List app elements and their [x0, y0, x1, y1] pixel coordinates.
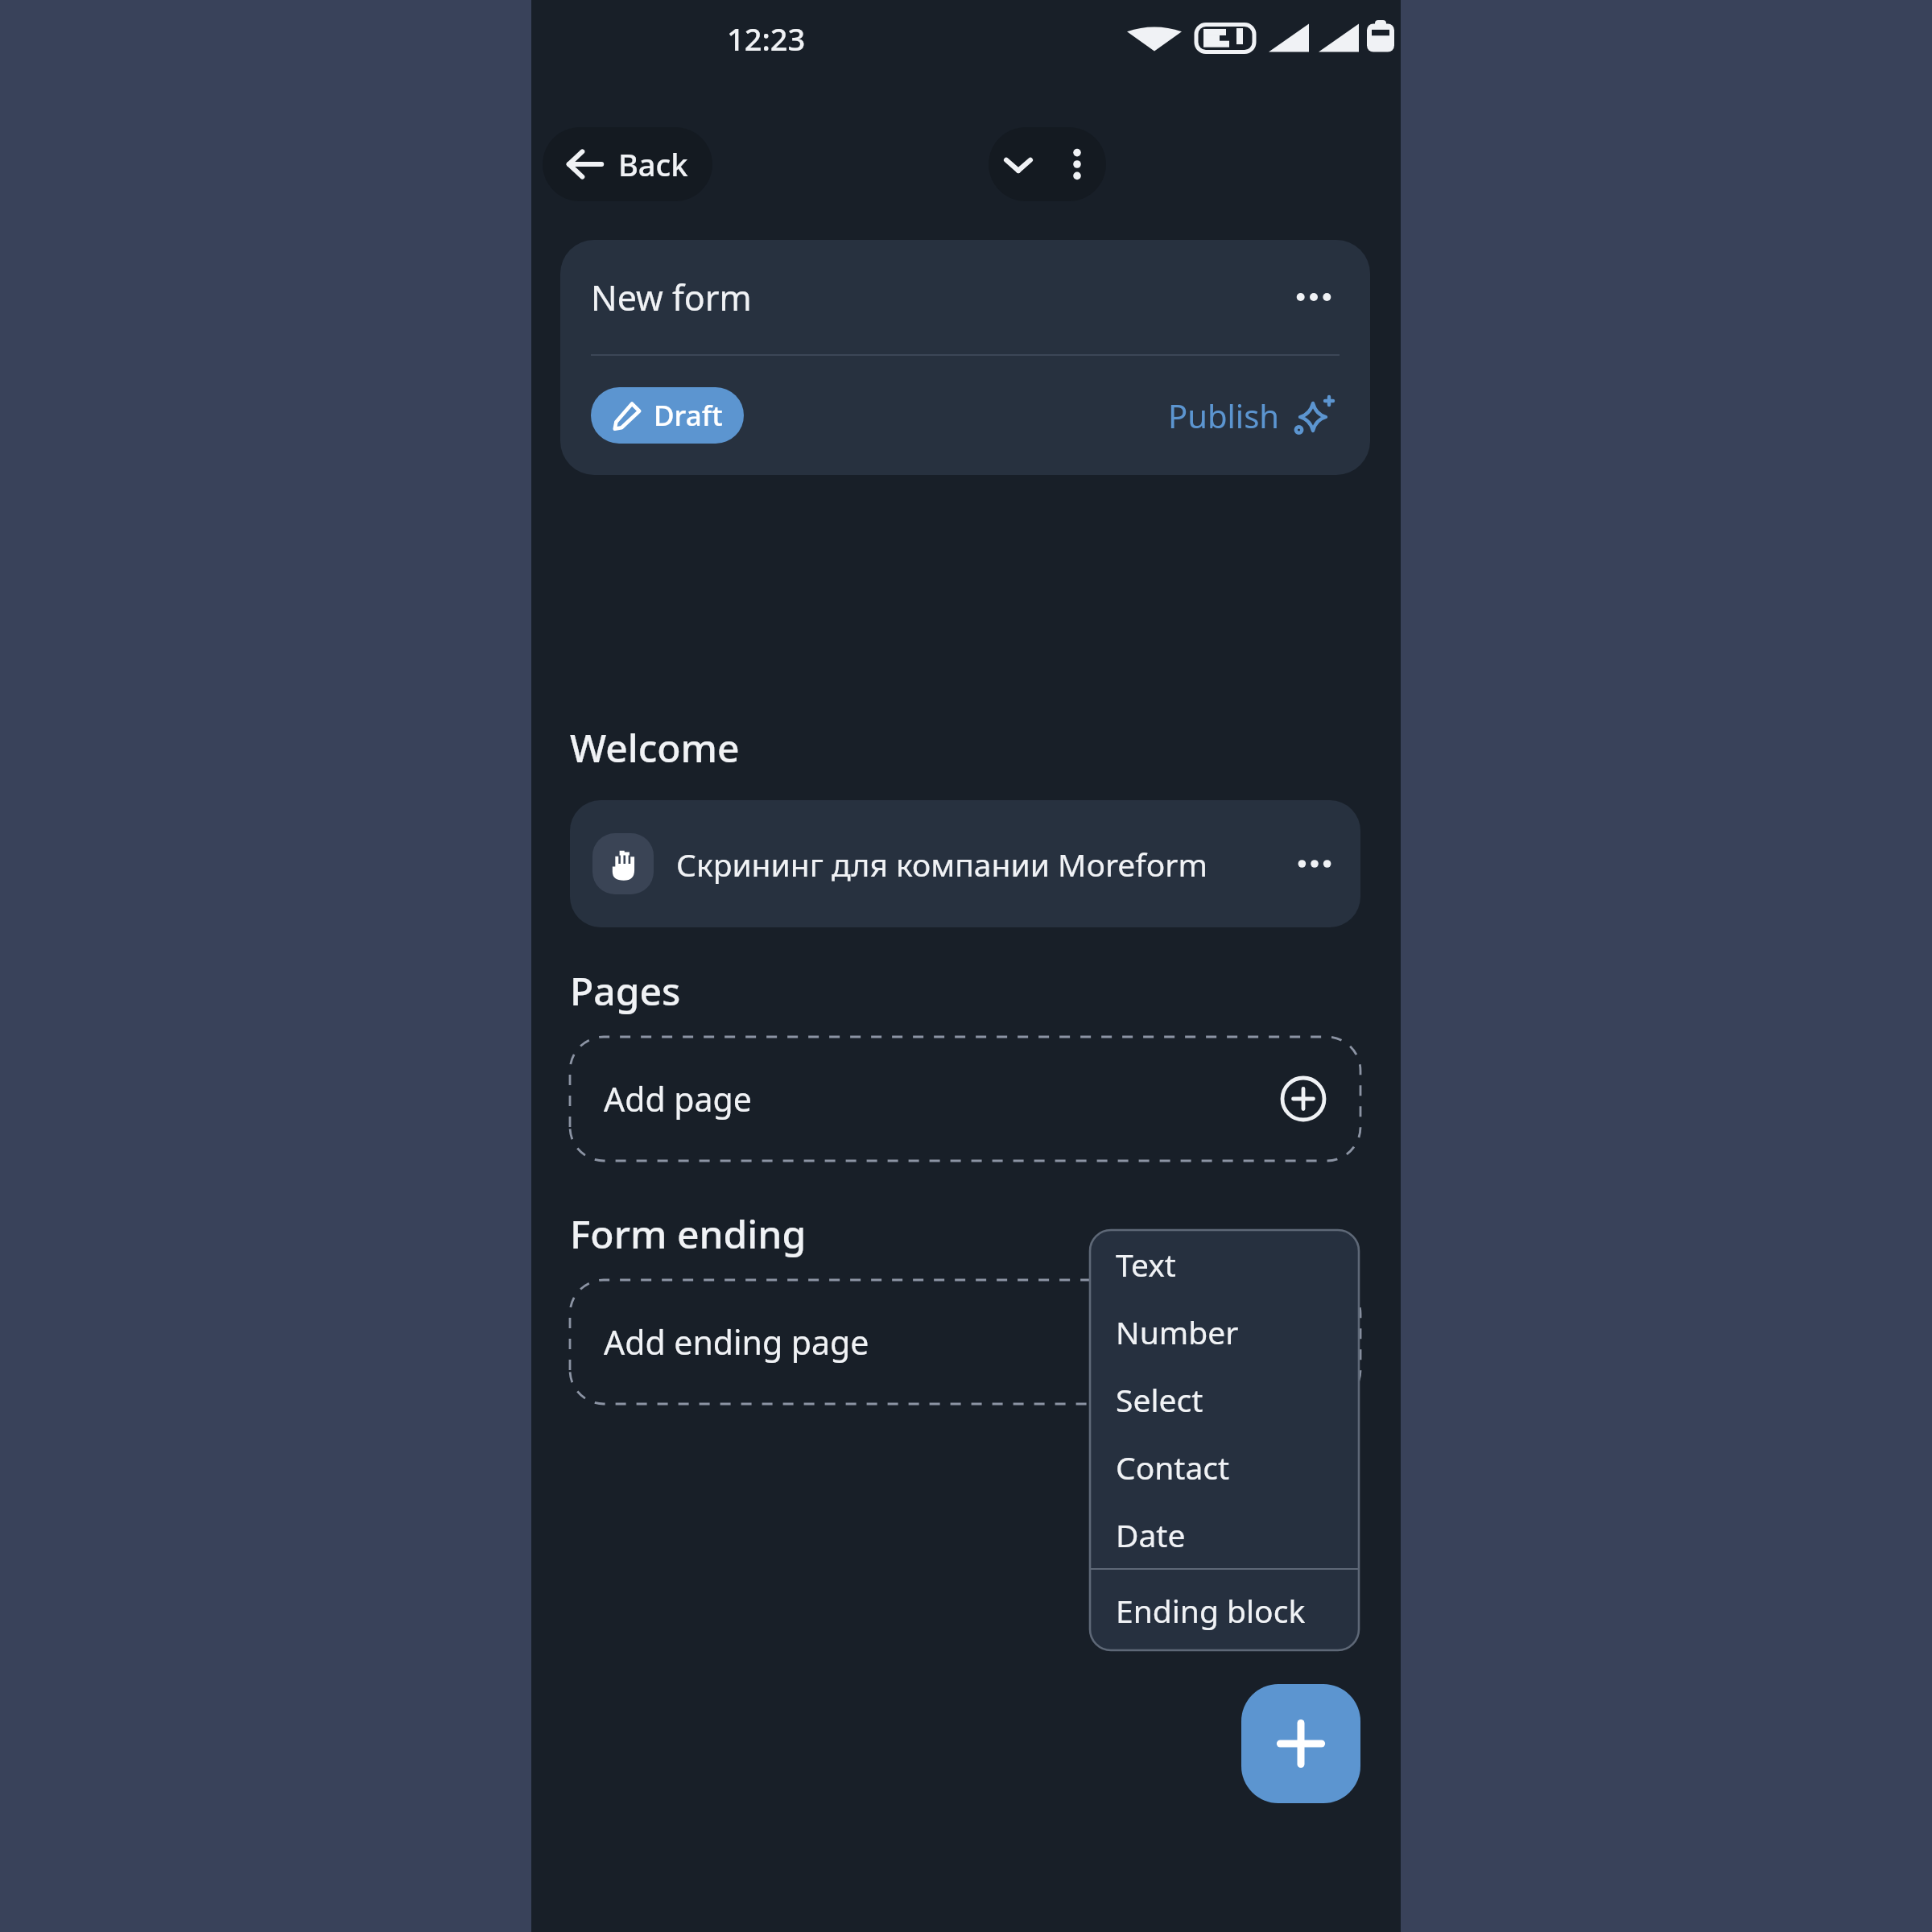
- staticText: Contact: [1116, 1446, 1230, 1488]
- staticText: Скрининг для компании Moreform: [676, 843, 1291, 885]
- button[interactable]: Form options: [1288, 271, 1340, 323]
- staticText: Ending block: [1116, 1589, 1306, 1632]
- button[interactable]: More options: [1047, 127, 1106, 201]
- staticText: Date: [1116, 1513, 1186, 1556]
- staticText: Welcome: [570, 721, 740, 774]
- button[interactable]: Date: [1090, 1501, 1359, 1568]
- button[interactable]: Contact: [1090, 1433, 1359, 1501]
- staticText: Publish: [1168, 394, 1280, 437]
- staticText: Draft: [654, 396, 723, 435]
- button[interactable]: Select: [1090, 1365, 1359, 1433]
- staticText: Add page: [604, 1076, 1280, 1121]
- button[interactable]: Add ending page: [570, 1280, 1360, 1404]
- button[interactable]: Back: [543, 127, 712, 201]
- button[interactable]: Publish: [1163, 389, 1340, 442]
- button[interactable]: Ending block: [1090, 1570, 1359, 1650]
- staticText: Form ending: [570, 1207, 807, 1260]
- button[interactable]: Add page: [570, 1037, 1360, 1161]
- staticText: Add ending page: [604, 1319, 1327, 1364]
- staticText: Back: [618, 143, 688, 185]
- button[interactable]: Add block: [1241, 1684, 1360, 1803]
- button[interactable]: New form: [560, 240, 1370, 475]
- button[interactable]: Draft: [591, 387, 744, 444]
- staticText: Text: [1116, 1243, 1176, 1286]
- button[interactable]: Expand: [989, 127, 1047, 201]
- staticText: Pages: [570, 964, 681, 1017]
- button[interactable]: Text: [1090, 1230, 1359, 1298]
- button[interactable]: Number: [1090, 1298, 1359, 1365]
- staticText: 12:23: [727, 18, 806, 60]
- staticText: Select: [1116, 1378, 1203, 1421]
- button[interactable]: Скрининг для компании Moreform: [570, 800, 1360, 927]
- staticText: Number: [1116, 1311, 1239, 1353]
- button[interactable]: Page options: [1291, 840, 1338, 887]
- staticText: New form: [591, 274, 1288, 321]
